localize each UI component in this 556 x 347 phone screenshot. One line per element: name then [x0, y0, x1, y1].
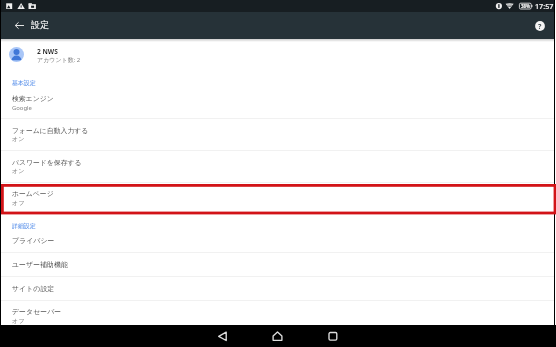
button[interactable]: ユーザー補助機能 — [1, 253, 554, 276]
staticText: 38% — [521, 3, 530, 9]
button[interactable]: ホームページ — [1, 183, 554, 214]
staticText: オン — [12, 167, 25, 175]
button[interactable]: パスワードを保存する — [1, 151, 554, 182]
staticText: ホームページ — [12, 189, 54, 198]
staticText: 17:57 — [535, 1, 554, 11]
staticText: 設定 — [31, 19, 49, 30]
button[interactable]: Home — [265, 325, 290, 347]
staticText: アカウント数: 2 — [37, 56, 81, 64]
staticText: 基本設定 — [12, 79, 36, 86]
button[interactable]: データセーバー — [1, 301, 554, 325]
staticText: Google — [12, 104, 32, 112]
staticText: フォームに自動入力する — [12, 126, 89, 135]
button[interactable]: ヘルプ — [531, 17, 549, 35]
button[interactable]: Back — [210, 325, 235, 347]
staticText: サイトの設定 — [12, 284, 55, 293]
staticText: プライバシー — [12, 236, 55, 245]
button[interactable]: 戻る — [8, 12, 29, 39]
button[interactable]: Recent apps — [320, 325, 345, 347]
staticText: ユーザー補助機能 — [12, 260, 68, 269]
button[interactable]: サイトの設定 — [1, 277, 554, 300]
button[interactable]: 検索エンジン — [1, 90, 554, 118]
staticText: ? — [538, 21, 542, 31]
button[interactable]: 2 NWS — [1, 41, 554, 74]
staticText: 検索エンジン — [12, 94, 54, 103]
button[interactable]: プライバシー — [1, 232, 554, 252]
staticText: データセーバー — [12, 307, 62, 316]
staticText: パスワードを保存する — [12, 158, 82, 167]
staticText: オフ — [12, 317, 25, 325]
staticText: オフ — [12, 199, 25, 207]
staticText: 2 NWS — [37, 47, 58, 56]
staticText: 詳細設定 — [12, 222, 36, 229]
staticText: オン — [12, 135, 25, 143]
button[interactable]: フォームに自動入力する — [1, 119, 554, 150]
